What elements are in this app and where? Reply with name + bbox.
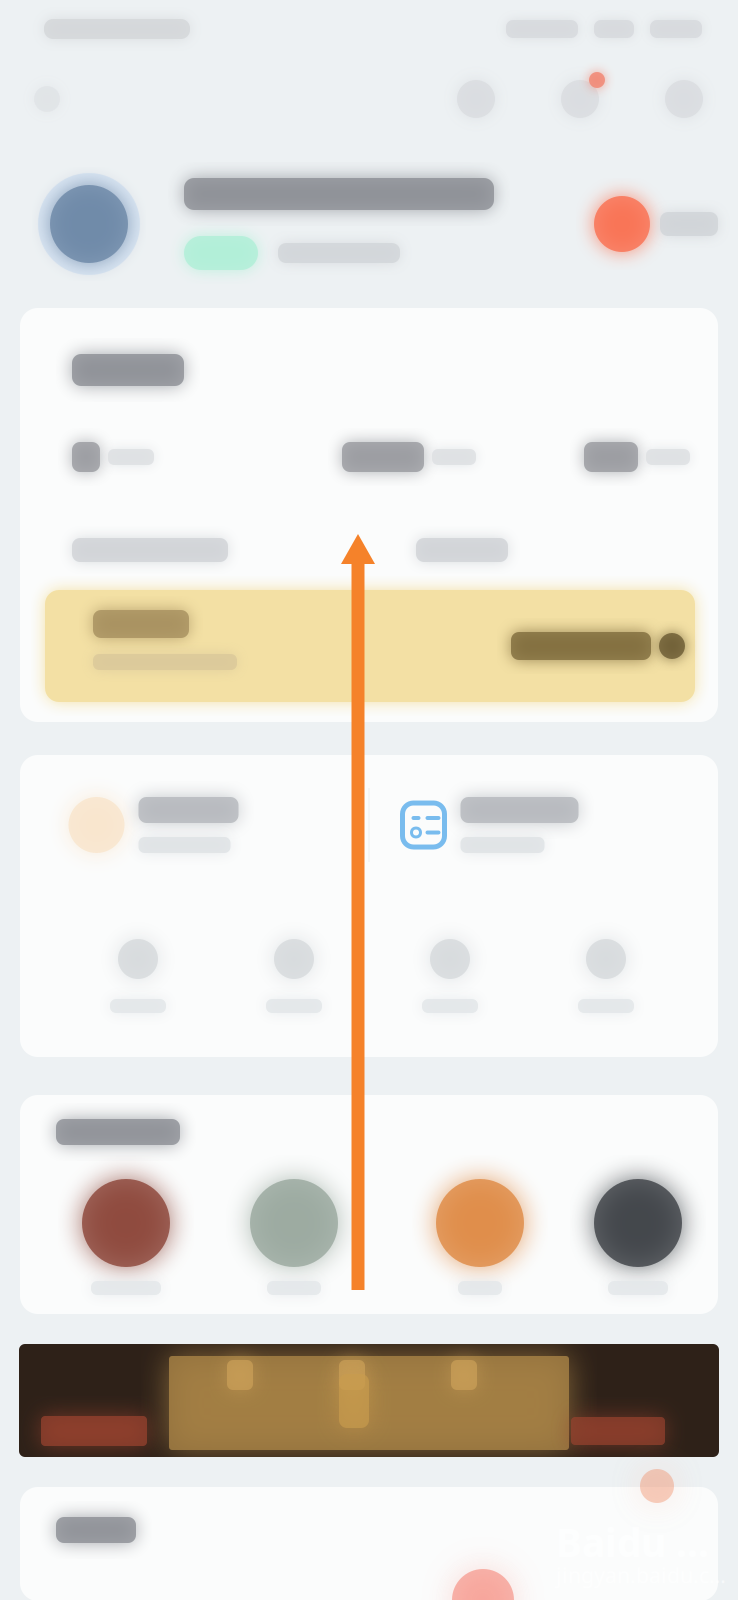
button[interactable]: Coupons [216,895,372,1057]
button[interactable]: Coupons [72,538,228,562]
staticText: jingyan.baidu.com [556,1561,734,1589]
button[interactable]: Help [446,69,506,129]
button[interactable]: Orders [372,895,528,1057]
button[interactable]: Recommended [594,1179,682,1295]
button[interactable]: Asset [342,442,476,472]
button[interactable]: Scan code [20,72,74,126]
button[interactable]: Advertisement [19,1344,719,1457]
button[interactable]: Balance [60,895,216,1057]
button[interactable]: My orders [369,755,718,895]
button[interactable]: Asset [72,442,154,472]
button[interactable]: Membership [594,196,718,252]
button[interactable]: Recommended [250,1179,338,1295]
button[interactable]: Settings [654,69,714,129]
button[interactable]: Promotion banner [45,590,695,702]
button[interactable]: Avatar [38,173,140,275]
button[interactable]: Favourites [528,895,684,1057]
button[interactable]: Recommended [436,1179,524,1295]
button[interactable]: Points [416,538,508,562]
button[interactable]: Member privileges [19,755,368,895]
button[interactable]: Messages, 1 unread [550,69,610,129]
button[interactable]: Asset [584,442,690,472]
staticText: Baidu 经验 [556,1516,734,1568]
button[interactable]: Recommended [82,1179,170,1295]
